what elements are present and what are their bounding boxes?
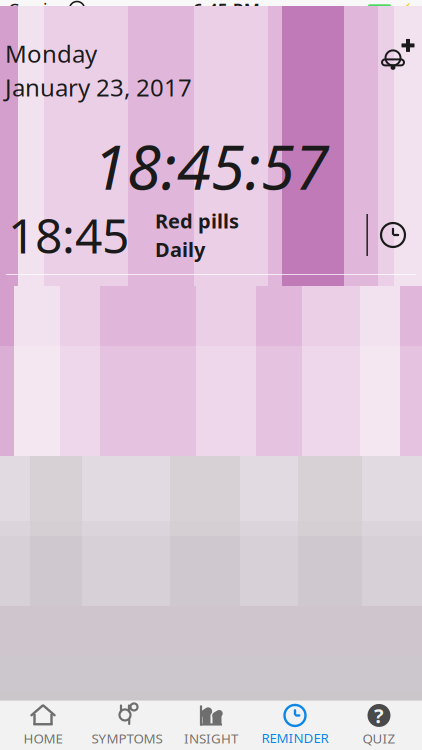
staticText: Carrier	[8, 0, 64, 21]
staticText: Reminder	[155, 26, 266, 56]
button[interactable]: 18:45	[0, 196, 422, 275]
staticText: HOME	[23, 729, 62, 747]
button[interactable]: ?	[337, 701, 421, 750]
staticText: 18:45	[8, 203, 129, 267]
staticText: 18:45:57	[93, 125, 329, 206]
staticText: 6:45 PM	[193, 0, 260, 21]
button[interactable]: REMINDER	[253, 701, 337, 750]
button[interactable]: Information	[380, 21, 420, 61]
staticText: ⚡	[397, 2, 414, 18]
staticText: QUIZ	[362, 729, 395, 747]
button[interactable]: Add reminder	[372, 37, 422, 73]
staticText: January 23, 2017	[5, 71, 192, 103]
button[interactable]: SYMPTOMS	[85, 701, 169, 750]
staticText: Monday	[5, 37, 97, 69]
staticText: ?	[374, 702, 384, 729]
staticText: Daily	[155, 236, 205, 263]
button[interactable]: INSIGHT	[169, 701, 253, 750]
staticText: INSIGHT	[184, 729, 238, 747]
staticText: Red pills	[155, 207, 239, 234]
staticText: REMINDER	[261, 729, 328, 747]
button[interactable]: HOME	[1, 701, 85, 750]
staticText: i	[398, 31, 402, 51]
staticText: SYMPTOMS	[91, 729, 162, 747]
